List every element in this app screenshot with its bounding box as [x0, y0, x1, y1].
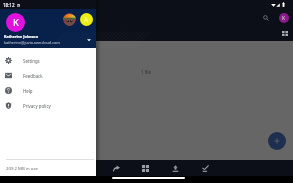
button[interactable]: Switch account: [84, 35, 93, 44]
button[interactable]: Grid view: [280, 28, 290, 38]
staticText: Help: [23, 88, 33, 94]
button[interactable]: Uploads: [164, 160, 186, 176]
staticText: A: [84, 15, 89, 24]
staticText: 1 file: [141, 69, 151, 75]
button[interactable]: Shared: [105, 160, 127, 176]
staticText: katherine@juvia.owncloud.com: [4, 40, 60, 45]
staticText: 18:12: [3, 2, 15, 8]
button[interactable]: Add: [268, 132, 286, 150]
button[interactable]: Account 3: [80, 13, 93, 26]
button[interactable]: Search: [260, 12, 272, 24]
staticText: Katherine Johnson: [4, 34, 39, 39]
staticText: Settings: [23, 58, 40, 64]
button[interactable]: Feedback: [0, 68, 96, 83]
staticText: K: [13, 16, 19, 29]
button[interactable]: Privacy policy: [0, 98, 96, 113]
button[interactable]: Files: [134, 160, 156, 176]
button[interactable]: Settings: [0, 53, 96, 68]
button[interactable]: Account 2: [63, 13, 76, 26]
staticText: Privacy policy: [23, 103, 51, 109]
button[interactable]: Activity: [194, 160, 216, 176]
button[interactable]: Katherine Johnson avatar: [6, 13, 25, 32]
staticText: Feedback: [23, 73, 43, 79]
staticText: 209.2 MB in use: [6, 165, 38, 171]
button[interactable]: Help: [0, 83, 96, 98]
button[interactable]: Account: [279, 13, 289, 23]
staticText: K: [282, 15, 286, 22]
